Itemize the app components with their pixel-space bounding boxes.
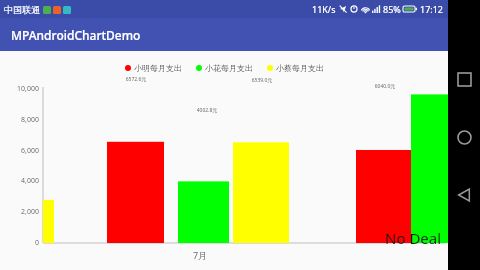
staticText: 小花每月支出 <box>205 63 253 73</box>
staticText: 6539.0元 <box>234 77 290 84</box>
staticText: 小明每月支出 <box>134 63 182 73</box>
button[interactable]: Recent apps <box>449 64 479 94</box>
staticText: 0 <box>0 238 39 248</box>
staticText: 85% <box>383 3 401 15</box>
button[interactable]: Back <box>449 180 479 210</box>
staticText: 4002.8元 <box>179 107 235 114</box>
staticText: No Deal <box>385 228 442 248</box>
staticText: 中国联通 <box>4 4 40 15</box>
button[interactable]: Home <box>449 122 479 152</box>
staticText: 6,000 <box>0 146 39 156</box>
staticText: 11K/s <box>312 3 336 15</box>
staticText: 小蔡每月支出 <box>276 63 324 73</box>
staticText: 6572.6元 <box>108 76 164 83</box>
staticText: 7月 <box>170 249 230 261</box>
staticText: 17:12 <box>420 3 444 15</box>
staticText: 4,000 <box>0 176 39 186</box>
staticText: 2,000 <box>0 207 39 217</box>
staticText: MPAndroidChartDemo <box>11 27 141 43</box>
staticText: 6040.0元 <box>357 83 413 90</box>
staticText: 10,000 <box>0 84 39 94</box>
staticText: 8,000 <box>0 115 39 125</box>
